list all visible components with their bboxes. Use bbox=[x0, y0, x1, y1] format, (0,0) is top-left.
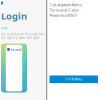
staticText: the quick brown fox jumps over the lazy … bbox=[1, 32, 45, 40]
staticText: Cek Sekarang bbox=[65, 77, 82, 81]
staticText: Cek Apakah Kamu Termasuk Calon Penerima … bbox=[49, 2, 81, 18]
staticText: sub bbox=[1, 25, 7, 30]
button[interactable]: Cek Sekarang bbox=[49, 75, 98, 83]
staticText: Login bbox=[1, 9, 27, 22]
staticText: brand bbox=[11, 47, 21, 52]
